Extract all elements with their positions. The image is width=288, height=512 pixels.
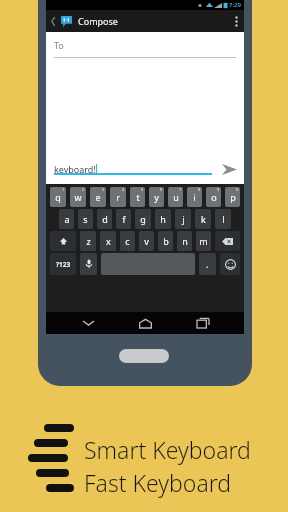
staticText: f bbox=[122, 213, 126, 225]
staticText: z bbox=[86, 235, 91, 247]
staticText: c bbox=[125, 235, 130, 247]
button[interactable]: o bbox=[206, 187, 221, 207]
button[interactable]: m bbox=[196, 231, 211, 251]
staticText: m bbox=[199, 235, 208, 247]
staticText: v bbox=[144, 235, 149, 247]
staticText: 4 bbox=[122, 187, 125, 192]
button[interactable]: e bbox=[90, 187, 106, 207]
button[interactable]: Send bbox=[218, 158, 240, 180]
staticText: 5 bbox=[141, 187, 144, 192]
staticText: x bbox=[106, 235, 111, 247]
button[interactable]: p bbox=[225, 187, 240, 207]
button[interactable]: k bbox=[195, 209, 211, 229]
staticText: w bbox=[74, 191, 82, 203]
staticText: t bbox=[136, 191, 140, 203]
staticText: d bbox=[102, 213, 108, 225]
staticText: e bbox=[95, 191, 101, 203]
button[interactable]: u bbox=[168, 187, 183, 207]
button[interactable]: Home bbox=[129, 312, 161, 334]
button[interactable]: b bbox=[158, 231, 173, 251]
staticText: Compose bbox=[78, 15, 118, 27]
staticText: 3 bbox=[102, 187, 105, 192]
staticText: s bbox=[83, 213, 88, 225]
staticText: 1 bbox=[62, 187, 65, 192]
button[interactable]: Backspace bbox=[215, 231, 240, 251]
button[interactable]: f bbox=[116, 209, 131, 229]
button[interactable]: Recent apps bbox=[187, 312, 219, 334]
staticText: 0 bbox=[236, 187, 239, 192]
staticText: l bbox=[222, 213, 225, 225]
button[interactable]: l bbox=[215, 209, 231, 229]
button[interactable]: i bbox=[187, 187, 202, 207]
button[interactable]: n bbox=[177, 231, 192, 251]
staticText: To bbox=[54, 39, 64, 51]
button[interactable]: Back bbox=[72, 312, 104, 334]
staticText: q bbox=[55, 191, 61, 203]
staticText: g bbox=[140, 213, 146, 225]
button[interactable]: v bbox=[139, 231, 154, 251]
staticText: u bbox=[173, 191, 179, 203]
staticText: r bbox=[116, 191, 120, 203]
button[interactable]: s bbox=[78, 209, 93, 229]
staticText: keyboard! bbox=[54, 163, 96, 175]
button[interactable]: w bbox=[70, 187, 86, 207]
staticText: 9 bbox=[217, 187, 220, 192]
staticText: . bbox=[206, 258, 209, 270]
button[interactable]: h bbox=[155, 209, 171, 229]
button[interactable]: q bbox=[50, 187, 66, 207]
staticText: a bbox=[64, 213, 70, 225]
button[interactable]: a bbox=[59, 209, 74, 229]
staticText: b bbox=[163, 235, 169, 247]
button[interactable]: t bbox=[130, 187, 145, 207]
staticText: j bbox=[182, 213, 185, 225]
button[interactable]: More options bbox=[228, 10, 244, 32]
staticText: n bbox=[182, 235, 188, 247]
button[interactable]: x bbox=[100, 231, 116, 251]
staticText: 8 bbox=[198, 187, 201, 192]
button[interactable]: z bbox=[80, 231, 96, 251]
button[interactable]: Emoji bbox=[220, 253, 240, 275]
button[interactable]: Home button bbox=[119, 349, 169, 363]
staticText: 7:29 bbox=[229, 1, 241, 9]
staticText: k bbox=[201, 213, 206, 225]
button[interactable]: y bbox=[149, 187, 164, 207]
staticText: y bbox=[154, 191, 159, 203]
staticText: Smart Keyboard bbox=[84, 434, 251, 465]
staticText: 7 bbox=[179, 187, 182, 192]
button[interactable]: ?123 bbox=[50, 253, 76, 275]
button[interactable]: Voice input bbox=[80, 253, 97, 275]
button[interactable]: c bbox=[120, 231, 135, 251]
button[interactable]: keyboard! bbox=[54, 163, 212, 175]
staticText: Fast Keyboard bbox=[84, 467, 232, 498]
staticText: h bbox=[160, 213, 166, 225]
staticText: o bbox=[211, 191, 217, 203]
staticText: p bbox=[230, 191, 236, 203]
staticText: 6 bbox=[160, 187, 163, 192]
button[interactable]: Shift bbox=[50, 231, 76, 251]
button[interactable]: To bbox=[54, 32, 236, 58]
button[interactable]: Back bbox=[46, 10, 60, 32]
button[interactable]: r bbox=[110, 187, 126, 207]
button[interactable]: g bbox=[135, 209, 151, 229]
staticText: i bbox=[193, 191, 196, 203]
button[interactable]: . bbox=[199, 253, 216, 275]
button[interactable]: d bbox=[97, 209, 112, 229]
staticText: ?123 bbox=[56, 260, 71, 269]
button[interactable]: j bbox=[175, 209, 191, 229]
staticText: 2 bbox=[82, 187, 85, 192]
